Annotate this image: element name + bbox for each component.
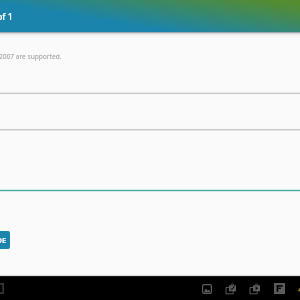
button[interactable]: Recent apps	[0, 283, 4, 294]
button[interactable]: Smart select	[273, 277, 285, 300]
staticText: 2007 are supported.	[0, 52, 62, 61]
button[interactable]: of 1	[0, 0, 300, 32]
button[interactable]: Pop up view	[249, 277, 261, 300]
button[interactable]: Screenshot	[201, 277, 213, 300]
staticText: CODE	[0, 235, 7, 245]
button[interactable]: Notifications	[297, 282, 300, 293]
staticText: of 1	[0, 11, 13, 23]
button[interactable]: Split screen view	[225, 277, 237, 300]
button[interactable]: CODE	[0, 231, 10, 249]
